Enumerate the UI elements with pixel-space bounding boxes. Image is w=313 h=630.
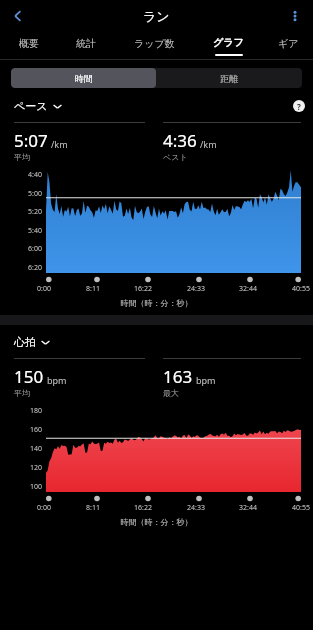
- staticText: 概要: [19, 37, 39, 50]
- staticText: 24:33: [187, 503, 205, 513]
- staticText: 160: [14, 425, 42, 435]
- staticText: 16:22: [134, 284, 152, 294]
- staticText: 時間: [75, 73, 93, 84]
- staticText: 心拍: [14, 335, 36, 349]
- staticText: 0:00: [37, 503, 51, 513]
- staticText: /km: [200, 138, 217, 150]
- staticText: 時間（時：分：秒）: [14, 517, 299, 527]
- button[interactable]: ペース: [14, 99, 63, 113]
- button[interactable]: 距離: [156, 68, 302, 88]
- staticText: グラフ: [213, 36, 244, 49]
- staticText: 5:20: [14, 207, 42, 217]
- staticText: ギア: [278, 37, 299, 50]
- button[interactable]: ラップ数: [114, 31, 194, 60]
- staticText: 8:11: [86, 503, 100, 513]
- button[interactable]: 時間: [11, 68, 156, 88]
- staticText: 163: [163, 365, 193, 388]
- staticText: 40:55: [292, 284, 310, 294]
- staticText: ラップ数: [134, 37, 175, 50]
- staticText: ベスト: [163, 152, 188, 162]
- button[interactable]: 統計: [57, 31, 114, 60]
- staticText: 0:00: [37, 284, 51, 294]
- staticText: 統計: [76, 37, 96, 50]
- staticText: /km: [51, 138, 68, 150]
- staticText: 32:44: [239, 284, 257, 294]
- staticText: ?: [297, 101, 301, 112]
- staticText: 24:33: [187, 284, 205, 294]
- button[interactable]: 心拍: [14, 335, 51, 349]
- staticText: 6:00: [14, 244, 42, 254]
- staticText: 40:55: [292, 503, 310, 513]
- staticText: 平均: [14, 388, 30, 398]
- staticText: 140: [14, 444, 42, 454]
- staticText: ペース: [14, 99, 48, 113]
- staticText: 180: [14, 406, 42, 416]
- staticText: 距離: [220, 73, 238, 84]
- button[interactable]: Help: [293, 100, 305, 112]
- staticText: 120: [14, 463, 42, 473]
- button[interactable]: グラフ: [194, 31, 263, 60]
- button[interactable]: Back: [3, 1, 33, 31]
- staticText: bpm: [196, 374, 216, 386]
- button[interactable]: More options: [280, 1, 310, 31]
- button[interactable]: 概要: [0, 31, 57, 60]
- staticText: bpm: [47, 374, 67, 386]
- staticText: 6:20: [14, 263, 42, 273]
- staticText: 5:07: [14, 129, 48, 152]
- staticText: 5:00: [14, 189, 42, 199]
- staticText: 150: [14, 365, 44, 388]
- staticText: 5:40: [14, 226, 42, 236]
- staticText: 4:40: [14, 170, 42, 180]
- staticText: 32:44: [239, 503, 257, 513]
- staticText: 100: [14, 482, 42, 492]
- staticText: 平均: [14, 152, 30, 162]
- staticText: ラン: [143, 8, 170, 24]
- staticText: 8:11: [86, 284, 100, 294]
- staticText: 最大: [163, 388, 179, 398]
- button[interactable]: ギア: [263, 31, 313, 60]
- staticText: 16:22: [134, 503, 152, 513]
- staticText: 時間（時：分：秒）: [14, 298, 299, 308]
- staticText: 4:36: [163, 129, 197, 152]
